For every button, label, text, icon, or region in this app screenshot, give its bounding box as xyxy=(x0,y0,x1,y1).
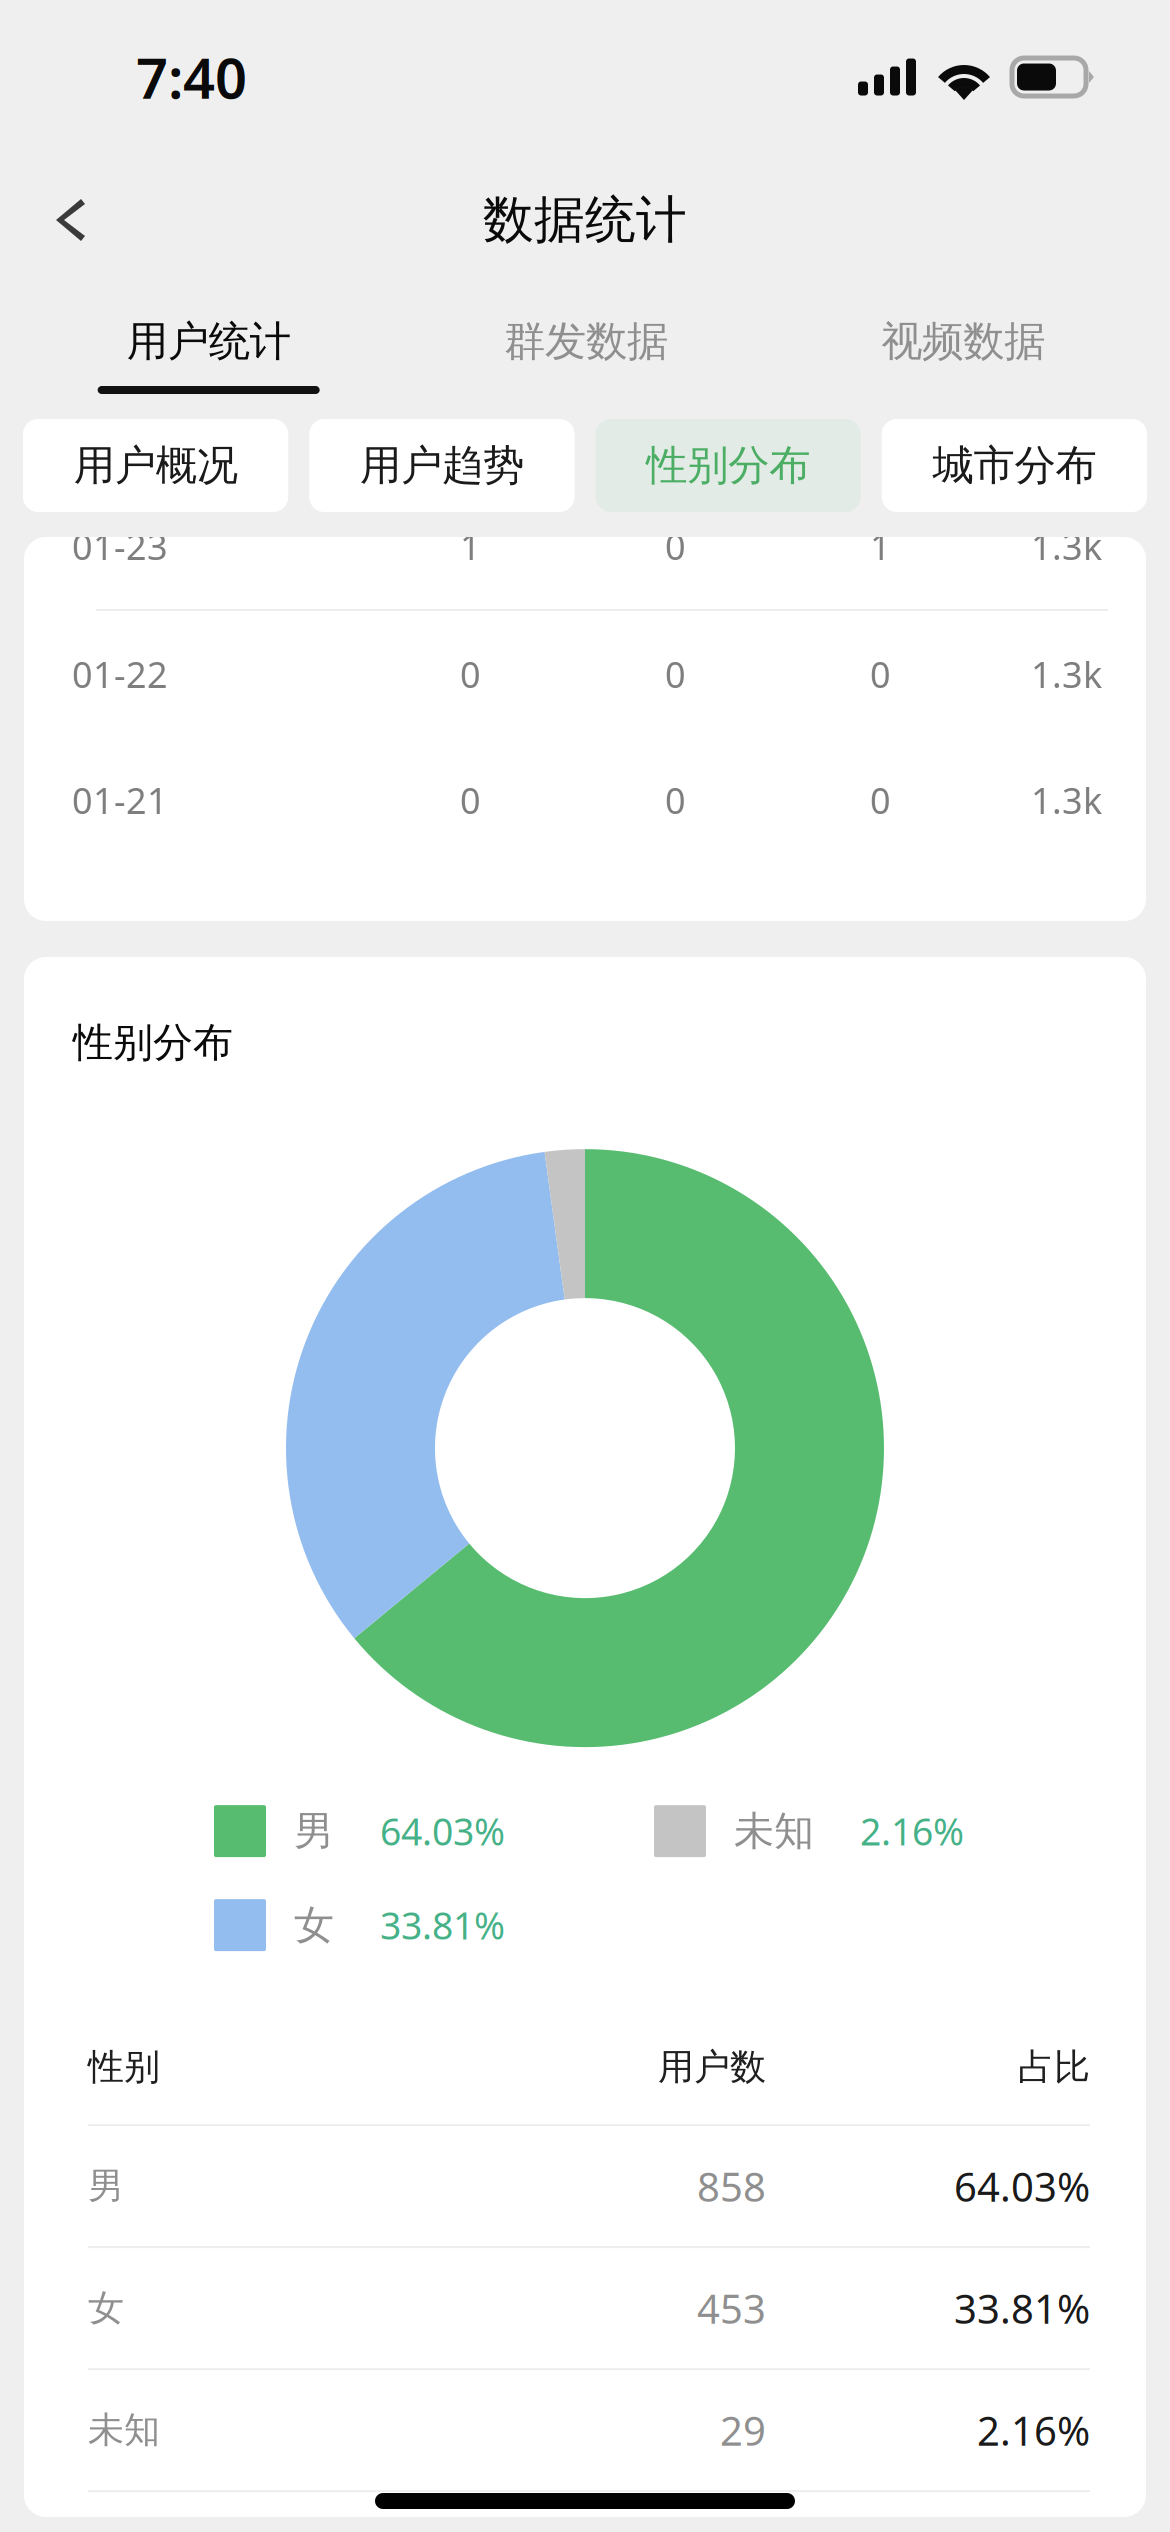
staticText: 0 xyxy=(665,650,686,698)
staticText: 33.81% xyxy=(380,1900,505,1950)
staticText: 1 xyxy=(870,522,891,570)
staticText: 0 xyxy=(665,776,686,824)
staticText: 0 xyxy=(460,650,481,698)
staticText: 0 xyxy=(870,650,891,698)
staticText: 性别 xyxy=(88,2045,160,2089)
staticText: 女 xyxy=(294,1901,334,1950)
staticText: 1.3k xyxy=(1031,650,1102,698)
button[interactable]: Back xyxy=(22,175,118,265)
staticText: 1.3k xyxy=(1031,522,1102,570)
staticText: 0 xyxy=(870,776,891,824)
staticText: 33.81% xyxy=(954,2282,1090,2335)
staticText: 性别分布 xyxy=(646,440,810,491)
staticText: 2.16% xyxy=(977,2404,1090,2457)
staticText: 用户统计 xyxy=(127,316,291,367)
staticText: 01-23 xyxy=(72,522,168,570)
button[interactable]: 城市分布 xyxy=(882,419,1147,512)
staticText: 0 xyxy=(665,522,686,570)
staticText: 0 xyxy=(460,776,481,824)
button[interactable]: 用户统计 xyxy=(20,286,397,404)
staticText: 453 xyxy=(697,2282,766,2335)
staticText: 用户数 xyxy=(658,2045,766,2089)
staticText: 占比 xyxy=(1018,2045,1090,2089)
staticText: 7:40 xyxy=(136,40,247,114)
staticText: 64.03% xyxy=(954,2160,1090,2213)
staticText: 未知 xyxy=(88,2408,160,2452)
staticText: 男 xyxy=(88,2164,124,2208)
staticText: 群发数据 xyxy=(504,316,668,367)
staticText: 视频数据 xyxy=(881,316,1045,367)
staticText: 1.3k xyxy=(1031,776,1102,824)
button[interactable]: 用户概况 xyxy=(23,419,288,512)
staticText: 性别分布 xyxy=(73,1018,233,1067)
button[interactable]: 视频数据 xyxy=(775,286,1152,404)
button[interactable]: 性别分布 xyxy=(595,419,861,512)
staticText: 女 xyxy=(88,2286,124,2330)
staticText: 用户概况 xyxy=(74,440,238,491)
staticText: 用户趋势 xyxy=(360,440,524,491)
staticText: 2.16% xyxy=(860,1806,964,1856)
staticText: 男 xyxy=(294,1807,334,1856)
staticText: 数据统计 xyxy=(483,189,687,251)
button[interactable]: 群发数据 xyxy=(397,286,775,404)
button[interactable]: 用户趋势 xyxy=(309,419,574,512)
staticText: 城市分布 xyxy=(932,440,1096,491)
staticText: 29 xyxy=(720,2404,766,2457)
staticText: 1 xyxy=(460,522,481,570)
staticText: 858 xyxy=(697,2160,766,2213)
staticText: 01-22 xyxy=(72,650,168,698)
staticText: 01-21 xyxy=(72,776,168,824)
staticText: 未知 xyxy=(734,1807,814,1856)
staticText: 64.03% xyxy=(380,1806,505,1856)
